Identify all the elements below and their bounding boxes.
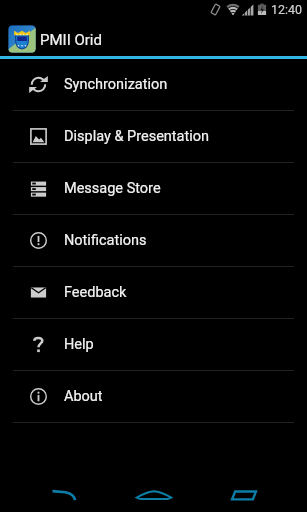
staticText: PMII Orid: [40, 31, 102, 49]
staticText: Feedback: [64, 284, 127, 301]
button[interactable]: Back: [18, 485, 110, 512]
button[interactable]: Message Store: [0, 163, 307, 214]
staticText: Help: [64, 336, 94, 353]
staticText: Synchronization: [64, 76, 168, 93]
button[interactable]: Notifications: [0, 215, 307, 266]
button[interactable]: Home: [102, 485, 206, 512]
staticText: About: [64, 388, 103, 405]
staticText: Notifications: [64, 232, 147, 249]
button[interactable]: Feedback: [0, 267, 307, 318]
button[interactable]: Synchronization: [0, 59, 307, 110]
staticText: 12:40: [271, 2, 303, 17]
button[interactable]: Help: [0, 319, 307, 370]
button[interactable]: Display & Presentation: [0, 111, 307, 162]
staticText: Display & Presentation: [64, 128, 210, 145]
button[interactable]: About: [0, 371, 307, 422]
button[interactable]: Recent apps: [197, 485, 291, 512]
staticText: Message Store: [64, 180, 161, 197]
